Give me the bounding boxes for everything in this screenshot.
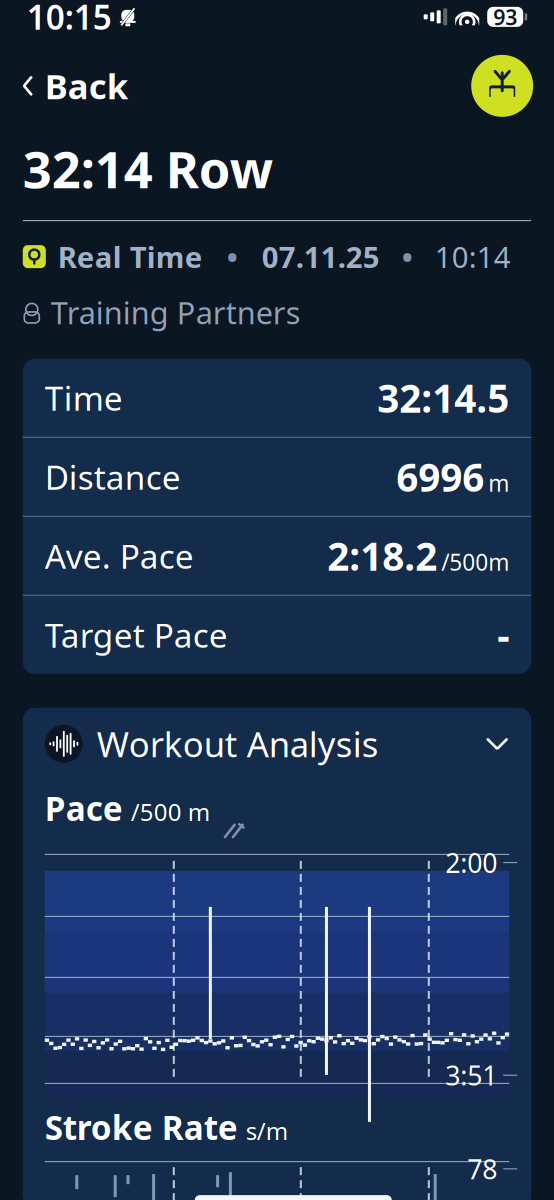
button[interactable]: Workout Analysis (23, 708, 531, 780)
staticText: 3:51 (445, 1057, 497, 1093)
staticText: Back (45, 63, 128, 109)
staticText: 32:14.5 (377, 372, 509, 423)
staticText: m (488, 468, 509, 498)
staticText: Workout Analysis (97, 721, 379, 767)
staticText: 10:14 (435, 237, 511, 276)
staticText: 78 (467, 1151, 497, 1186)
staticText: Training Partners (51, 292, 301, 333)
staticText: 07.11.25 (262, 237, 380, 276)
staticText: Pace (45, 786, 123, 830)
staticText: 2:18.2 (327, 530, 437, 581)
staticText: - (497, 609, 509, 660)
staticText: • (227, 237, 238, 276)
button[interactable]: Training Partners (0, 276, 554, 333)
staticText: Real Time (58, 237, 203, 276)
staticText: 32:14 Row (23, 135, 273, 202)
staticText: 10:15 (27, 0, 112, 39)
staticText: 2:00 (445, 845, 497, 880)
staticText: Stroke Rate (45, 1105, 238, 1149)
staticText: Time (45, 376, 123, 420)
staticText: /500m (441, 547, 509, 577)
button[interactable]: Back (21, 55, 128, 117)
staticText: 6996 (396, 451, 484, 502)
staticText: Ave. Pace (45, 534, 194, 578)
staticText: Distance (45, 455, 181, 499)
staticText: s/m (246, 1115, 288, 1147)
staticText: • (402, 237, 413, 276)
staticText: /500 m (131, 796, 210, 827)
staticText: 93 (493, 3, 517, 31)
staticText: Target Pace (45, 613, 228, 657)
button[interactable]: Upload (471, 55, 533, 117)
